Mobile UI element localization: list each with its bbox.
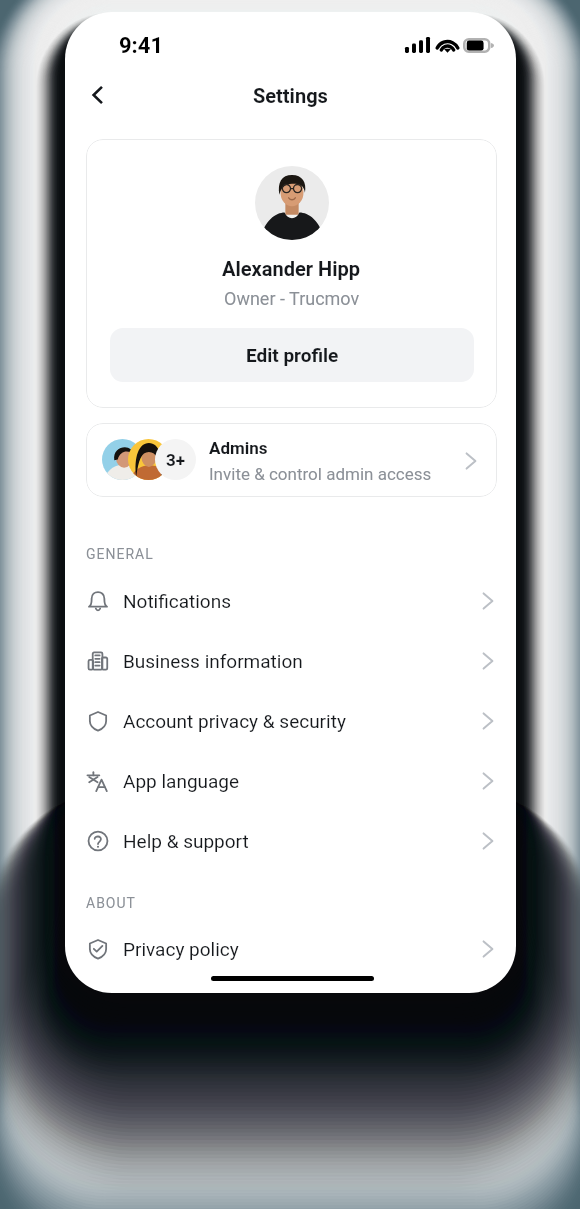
button[interactable]: Privacy policy bbox=[65, 919, 516, 979]
button[interactable]: Account privacy & security bbox=[65, 691, 516, 751]
staticText: 9:41 bbox=[119, 33, 164, 59]
staticText: Admins bbox=[209, 438, 268, 458]
staticText: Privacy policy bbox=[123, 938, 477, 960]
staticText: Notifications bbox=[123, 590, 477, 612]
button[interactable]: 3+ bbox=[86, 423, 497, 497]
staticText: Help & support bbox=[123, 830, 477, 852]
staticText: Alexander Hipp bbox=[222, 257, 361, 280]
button[interactable]: Business information bbox=[65, 631, 516, 691]
button[interactable]: Notifications bbox=[65, 571, 516, 631]
staticText: ABOUT bbox=[86, 895, 136, 911]
staticText: GENERAL bbox=[86, 546, 154, 562]
staticText: Business information bbox=[123, 650, 477, 672]
button[interactable]: App language bbox=[65, 751, 516, 811]
staticText: Edit profile bbox=[246, 344, 339, 366]
staticText: Invite & control admin access bbox=[209, 464, 432, 484]
staticText: App language bbox=[123, 770, 477, 792]
staticText: Account privacy & security bbox=[123, 710, 477, 732]
staticText: 3+ bbox=[166, 450, 186, 470]
button[interactable]: Edit profile bbox=[110, 328, 474, 382]
staticText: Settings bbox=[253, 84, 328, 107]
button[interactable]: Help & support bbox=[65, 811, 516, 871]
staticText: Owner - Trucmov bbox=[224, 288, 360, 309]
button[interactable]: Back bbox=[76, 73, 120, 117]
